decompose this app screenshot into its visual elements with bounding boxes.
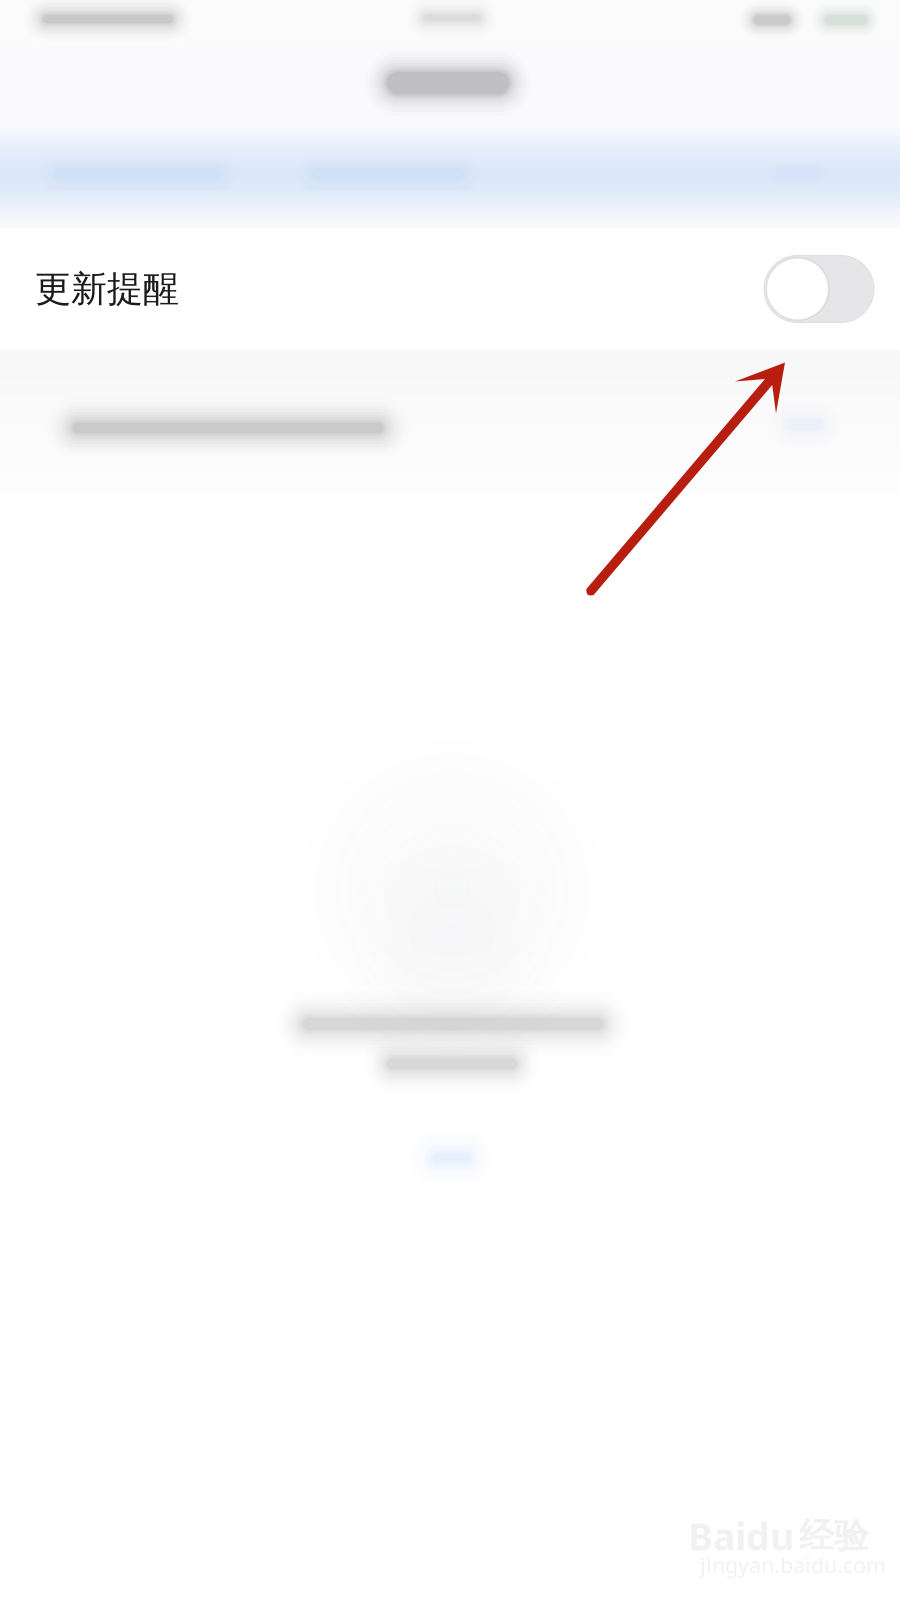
staticText: jingyan.baidu.com bbox=[700, 1551, 886, 1579]
staticText: Baidu bbox=[688, 1511, 794, 1561]
staticText: 经验 bbox=[799, 1515, 869, 1557]
button[interactable]: 更新提醒 bbox=[0, 228, 900, 350]
staticText: 更新提醒 bbox=[35, 267, 179, 311]
